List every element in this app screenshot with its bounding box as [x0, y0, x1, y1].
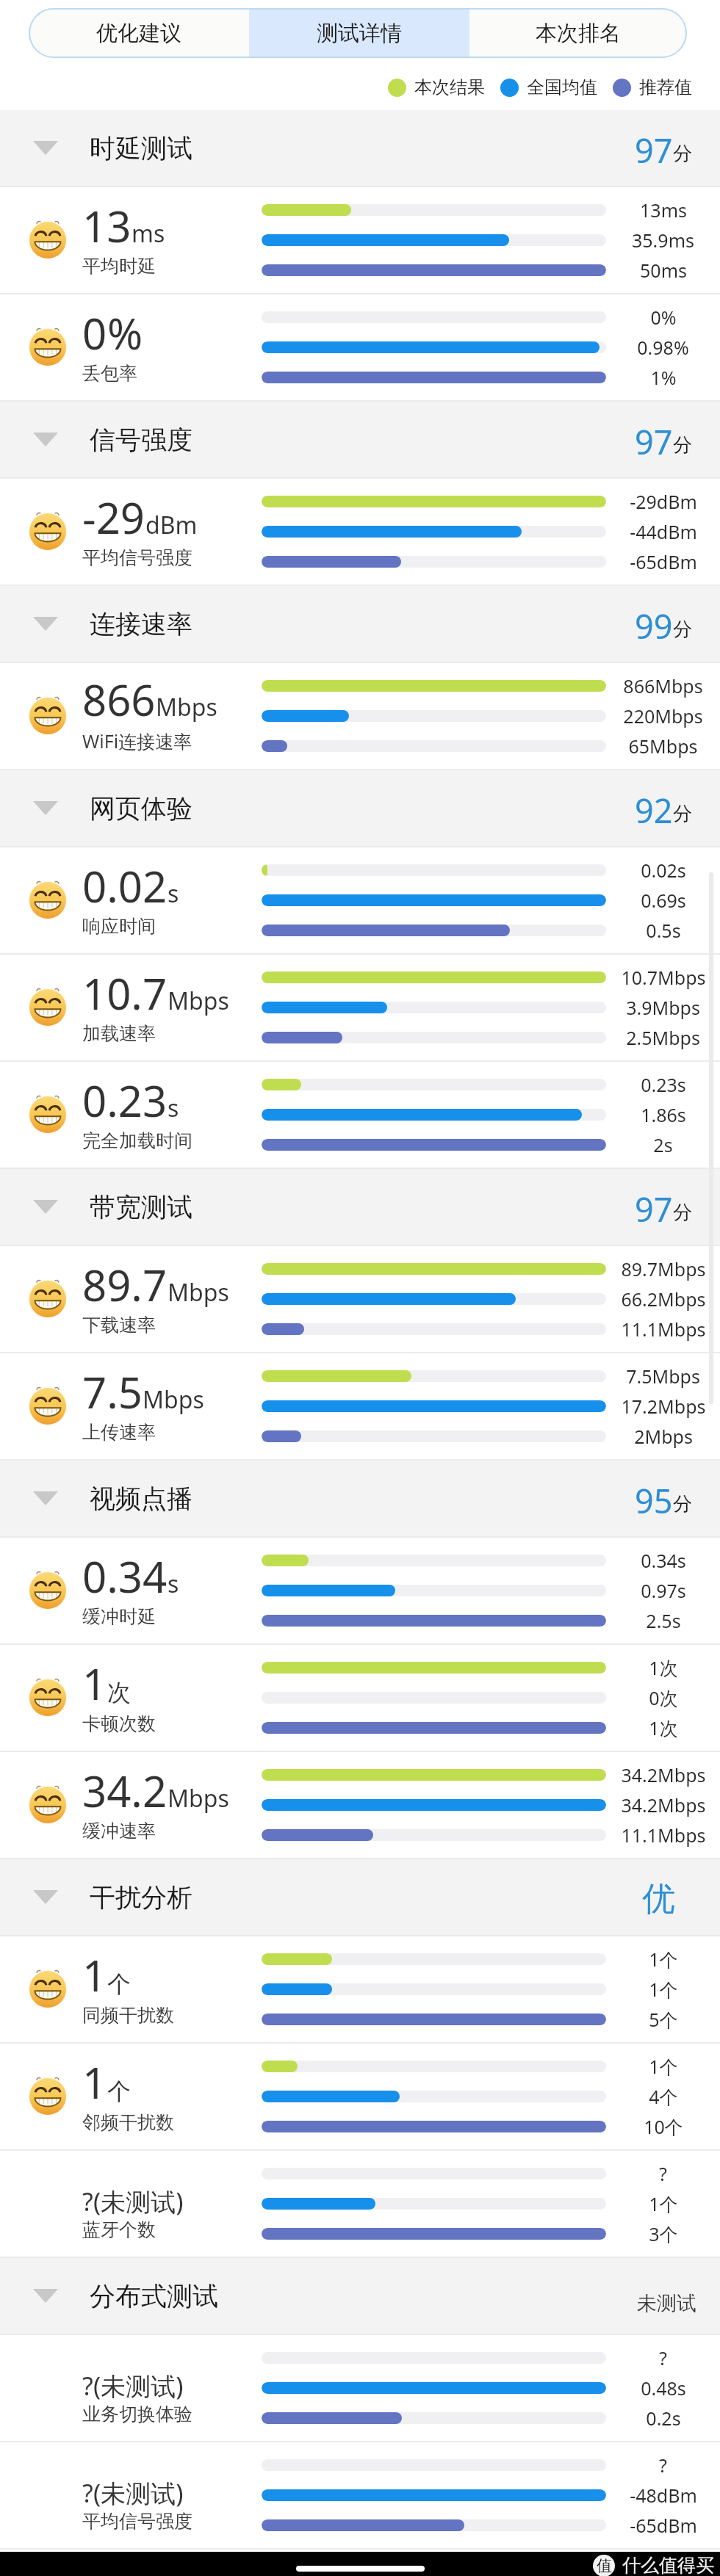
staticText: -29dBm — [630, 489, 697, 514]
staticText: 1次 — [649, 1655, 678, 1680]
button[interactable]: 10.7 — [0, 955, 720, 1060]
staticText: 10.7 — [82, 964, 168, 1022]
staticText: Mbps — [168, 1782, 229, 1815]
button[interactable]: -29 — [0, 479, 720, 585]
staticText: 4个 — [649, 2084, 678, 2109]
staticText: 分 — [673, 1492, 692, 1516]
staticText: (未测试) — [93, 2476, 184, 2510]
staticText: 时延测试 — [90, 132, 192, 164]
staticText: 34.2Mbps — [621, 1762, 706, 1787]
button[interactable]: Collapse 连接速率 — [0, 586, 720, 662]
staticText: 13ms — [640, 198, 687, 222]
button[interactable]: 0.02 — [0, 847, 720, 953]
staticText: 平均时延 — [82, 255, 156, 278]
button[interactable]: 1 — [0, 1645, 720, 1751]
other: Collapse 连接速率 — [33, 617, 58, 631]
button[interactable]: Collapse 视频点播 — [0, 1461, 720, 1536]
staticText: 0.02 — [82, 857, 168, 915]
staticText: 响应时间 — [82, 915, 156, 938]
button[interactable]: 测试详情 — [249, 8, 469, 58]
staticText: 5个 — [649, 2007, 678, 2032]
button[interactable]: 0 — [0, 294, 720, 400]
staticText: 1 — [82, 1946, 107, 2004]
staticText: Mbps — [168, 1276, 229, 1309]
staticText: ? — [82, 2185, 93, 2218]
staticText: -65dBm — [630, 549, 697, 574]
staticText: Mbps — [156, 691, 217, 723]
button[interactable]: 0.34 — [0, 1538, 720, 1643]
staticText: 0.2s — [646, 2406, 681, 2431]
staticText: 0% — [650, 305, 677, 330]
button[interactable]: Collapse 干扰分析 — [0, 1859, 720, 1935]
button[interactable]: Collapse 带宽测试 — [0, 1169, 720, 1245]
staticText: 1个 — [649, 1977, 678, 2002]
staticText: ms — [132, 217, 165, 250]
button[interactable]: ? — [0, 2335, 720, 2441]
staticText: 全国均值 — [527, 76, 597, 98]
staticText: 2.5Mbps — [626, 1025, 700, 1050]
staticText: ? — [659, 2453, 667, 2478]
staticText: 网页体验 — [90, 792, 192, 825]
staticText: 本次排名 — [536, 20, 621, 47]
staticText: 65Mbps — [628, 734, 698, 759]
staticText: 丢包率 — [82, 362, 137, 385]
staticText: ? — [659, 2161, 667, 2186]
button[interactable]: 89.7 — [0, 1246, 720, 1352]
staticText: 97 — [635, 1187, 673, 1231]
staticText: 带宽测试 — [90, 1191, 192, 1223]
button[interactable]: Collapse 时延测试 — [0, 110, 720, 186]
staticText: 0.02s — [641, 858, 686, 883]
staticText: 完全加载时间 — [82, 1129, 192, 1152]
staticText: 866Mbps — [623, 673, 703, 698]
staticText: 测试详情 — [317, 20, 402, 47]
staticText: s — [168, 1092, 179, 1124]
staticText: 分布式测试 — [90, 2280, 218, 2312]
staticText: 连接速率 — [90, 608, 192, 640]
staticText: 个 — [107, 1969, 131, 1999]
button[interactable]: ? — [0, 2442, 720, 2548]
button[interactable]: Collapse 网页体验 — [0, 770, 720, 846]
staticText: 次 — [107, 1678, 131, 1707]
staticText: 下载速率 — [82, 1314, 156, 1336]
button[interactable]: 7.5 — [0, 1353, 720, 1459]
button[interactable]: 本次排名 — [469, 8, 687, 58]
button[interactable]: 优化建议 — [29, 8, 249, 58]
button[interactable]: 34.2 — [0, 1752, 720, 1858]
staticText: 3.9Mbps — [626, 995, 700, 1020]
staticText: 34.2 — [82, 1762, 168, 1820]
staticText: 个 — [107, 2077, 131, 2106]
staticText: 上传速率 — [82, 1421, 156, 1444]
button[interactable]: Collapse 分布式测试 — [0, 2258, 720, 2334]
staticText: 1个 — [649, 2054, 678, 2079]
staticText: 13 — [82, 197, 132, 255]
button[interactable]: 1 — [0, 2044, 720, 2149]
staticText: 信号强度 — [90, 424, 192, 456]
staticText: 1.86s — [641, 1102, 686, 1127]
other: Collapse 带宽测试 — [33, 1200, 58, 1214]
button[interactable]: 866 — [0, 663, 720, 769]
staticText: 97 — [635, 128, 673, 173]
staticText: 11.1Mbps — [621, 1823, 706, 1848]
staticText: WiFi连接速率 — [82, 728, 192, 753]
button[interactable]: Collapse 信号强度 — [0, 402, 720, 477]
button[interactable]: 0.23 — [0, 1062, 720, 1168]
staticText: 50ms — [640, 258, 687, 283]
staticText: 平均信号强度 — [82, 2510, 192, 2533]
staticText: 0.98% — [637, 335, 689, 360]
staticText: 866 — [82, 670, 156, 728]
staticText: 1个 — [649, 1947, 678, 1972]
button[interactable]: 13 — [0, 187, 720, 293]
staticText: -29 — [82, 488, 145, 546]
button[interactable]: ? — [0, 2151, 720, 2257]
staticText: 2Mbps — [634, 1424, 693, 1449]
staticText: 0次 — [649, 1685, 678, 1710]
staticText: 97 — [635, 419, 673, 464]
other: Collapse 干扰分析 — [33, 1890, 58, 1904]
staticText: 什么值得买 — [622, 2554, 714, 2576]
staticText: 邻频干扰数 — [82, 2111, 174, 2134]
staticText: 优化建议 — [96, 20, 181, 47]
staticText: 分 — [673, 142, 692, 166]
button[interactable]: 1 — [0, 1936, 720, 2042]
staticText: dBm — [145, 509, 198, 541]
staticText: 35.9ms — [632, 228, 694, 253]
